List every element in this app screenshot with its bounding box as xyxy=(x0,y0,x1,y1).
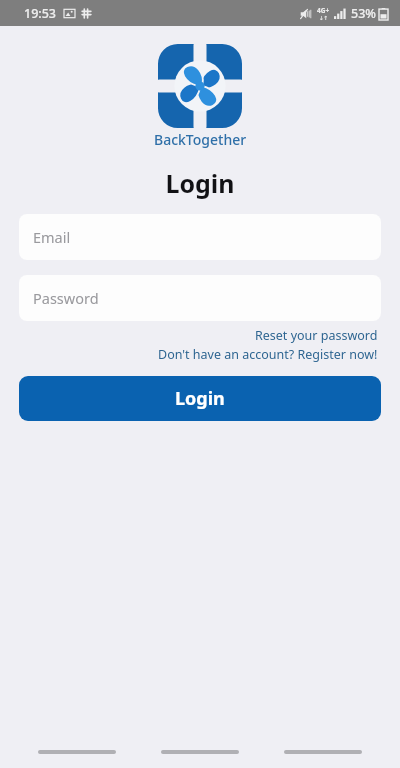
staticText: 53% xyxy=(351,5,376,22)
staticText: Don't have an account? Register now! xyxy=(158,346,378,363)
staticText: Login xyxy=(175,386,225,411)
button[interactable]: Recents xyxy=(284,745,362,759)
staticText: 4G+ xyxy=(317,6,330,15)
button[interactable]: Login xyxy=(19,376,381,421)
button[interactable]: Home xyxy=(161,745,239,759)
staticText: Reset your password xyxy=(255,327,378,344)
button[interactable]: Don't have an account? Register now! xyxy=(156,345,380,364)
button[interactable]: Password xyxy=(19,275,381,321)
button[interactable]: Reset your password xyxy=(253,326,380,345)
staticText: Email xyxy=(33,227,71,247)
staticText: 19:53 xyxy=(24,5,57,22)
button[interactable]: Back xyxy=(38,745,116,759)
staticText: BackTogether xyxy=(154,130,247,149)
staticText: Password xyxy=(33,288,99,308)
staticText: ↓↑ xyxy=(319,15,329,21)
button[interactable]: Email xyxy=(19,214,381,260)
staticText: Login xyxy=(0,166,400,200)
